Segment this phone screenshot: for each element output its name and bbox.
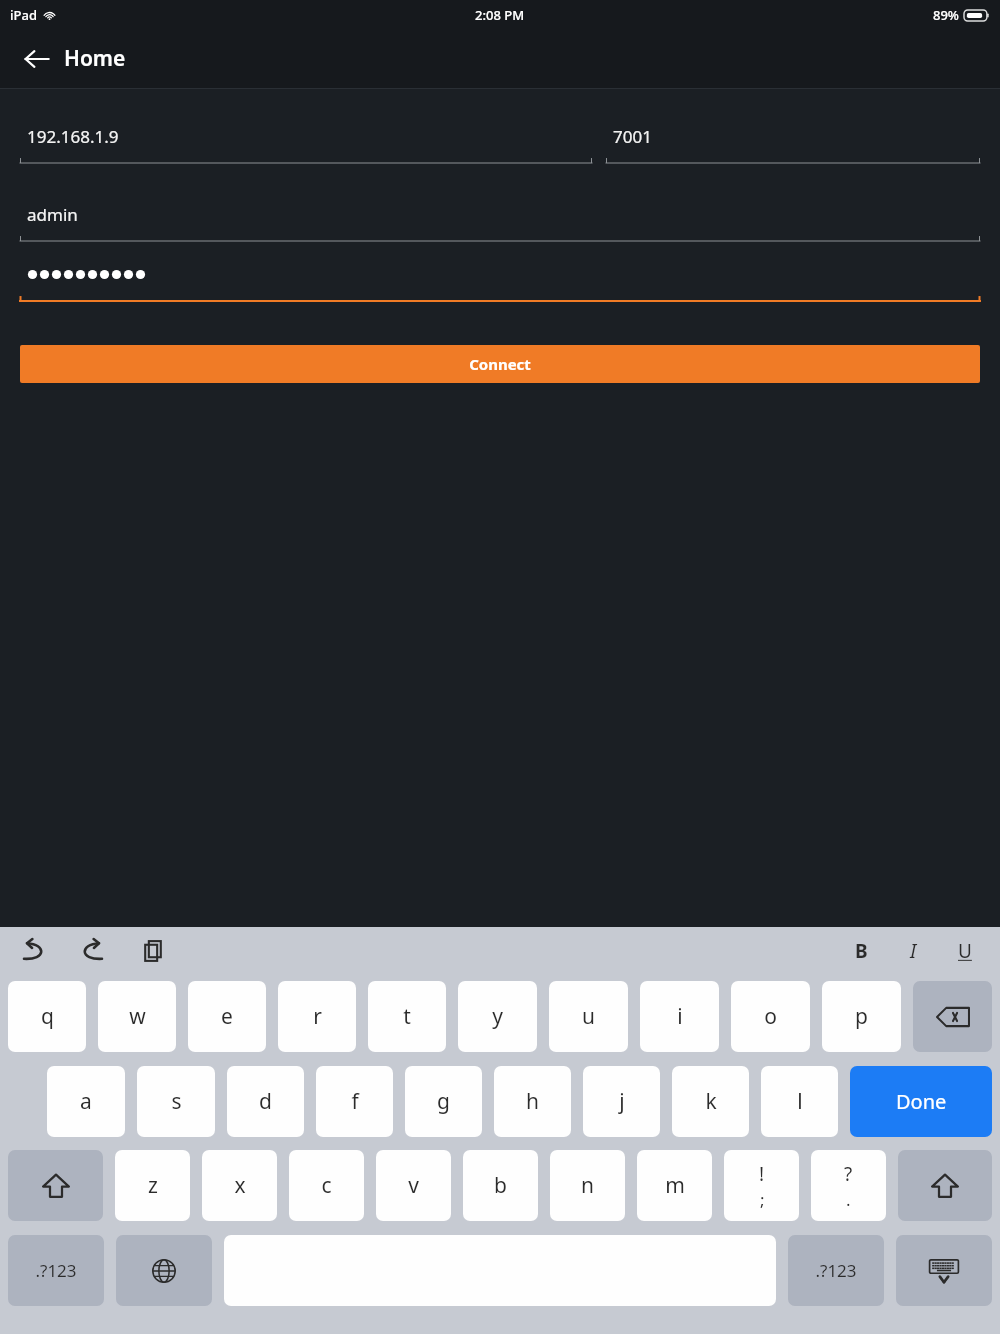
staticText: B bbox=[855, 938, 868, 964]
staticText: g bbox=[437, 1087, 450, 1116]
button[interactable]: g bbox=[405, 1066, 482, 1137]
button[interactable]: Hide keyboard bbox=[896, 1235, 992, 1306]
button[interactable]: l bbox=[761, 1066, 838, 1137]
staticText: y bbox=[492, 1002, 503, 1031]
button[interactable]: q bbox=[8, 981, 86, 1052]
staticText: I bbox=[910, 938, 917, 964]
staticText: n bbox=[581, 1171, 594, 1200]
button[interactable]: y bbox=[458, 981, 537, 1052]
staticText: m bbox=[665, 1171, 685, 1200]
staticText: 89% bbox=[933, 6, 959, 24]
button[interactable]: .?123 bbox=[8, 1235, 104, 1306]
staticText: x bbox=[234, 1171, 246, 1200]
staticText: h bbox=[526, 1087, 539, 1116]
button[interactable]: k bbox=[672, 1066, 749, 1137]
button[interactable]: w bbox=[98, 981, 176, 1052]
button[interactable]: ? bbox=[811, 1150, 886, 1221]
button[interactable]: Back bbox=[14, 36, 60, 82]
button[interactable]: m bbox=[637, 1150, 712, 1221]
button[interactable]: c bbox=[289, 1150, 364, 1221]
button[interactable]: Connect bbox=[20, 345, 980, 383]
staticText: s bbox=[171, 1087, 182, 1116]
button[interactable]: o bbox=[731, 981, 810, 1052]
button[interactable]: u bbox=[549, 981, 628, 1052]
button[interactable]: ! bbox=[724, 1150, 799, 1221]
button[interactable]: t bbox=[368, 981, 446, 1052]
button[interactable] bbox=[20, 248, 980, 308]
button[interactable]: Backspace bbox=[913, 981, 992, 1052]
staticText: t bbox=[403, 1002, 411, 1031]
staticText: ; bbox=[760, 1188, 765, 1211]
staticText: 7001 bbox=[613, 125, 652, 148]
button[interactable]: j bbox=[583, 1066, 660, 1137]
button[interactable]: Undo bbox=[14, 932, 52, 970]
staticText: .?123 bbox=[35, 1259, 77, 1282]
staticText: o bbox=[764, 1002, 777, 1031]
button[interactable]: d bbox=[227, 1066, 304, 1137]
staticText: v bbox=[408, 1171, 419, 1200]
staticText: .?123 bbox=[815, 1259, 857, 1282]
button[interactable]: r bbox=[278, 981, 356, 1052]
staticText: c bbox=[321, 1171, 332, 1200]
button[interactable]: e bbox=[188, 981, 266, 1052]
button[interactable]: h bbox=[494, 1066, 571, 1137]
staticText: q bbox=[41, 1002, 54, 1031]
button[interactable]: Shift bbox=[8, 1150, 103, 1221]
button[interactable]: Redo bbox=[74, 932, 112, 970]
staticText: j bbox=[619, 1087, 625, 1116]
button[interactable]: b bbox=[463, 1150, 538, 1221]
staticText: 2:08 PM bbox=[475, 6, 525, 24]
staticText: ! bbox=[759, 1161, 765, 1187]
staticText: Done bbox=[896, 1088, 947, 1115]
staticText: l bbox=[797, 1087, 803, 1116]
button[interactable]: B bbox=[844, 934, 878, 968]
staticText: Home bbox=[64, 44, 126, 73]
button[interactable]: z bbox=[115, 1150, 190, 1221]
staticText: . bbox=[846, 1188, 851, 1211]
button[interactable]: i bbox=[640, 981, 719, 1052]
staticText: d bbox=[259, 1087, 272, 1116]
button[interactable]: Done bbox=[850, 1066, 992, 1137]
staticText: k bbox=[705, 1087, 717, 1116]
staticText: 192.168.1.9 bbox=[27, 125, 119, 148]
button[interactable]: U bbox=[948, 934, 982, 968]
staticText: b bbox=[494, 1171, 507, 1200]
button[interactable]: I bbox=[896, 934, 930, 968]
button[interactable]: n bbox=[550, 1150, 625, 1221]
button[interactable]: 192.168.1.9 bbox=[20, 110, 592, 170]
staticText: w bbox=[129, 1002, 146, 1031]
button[interactable]: Paste bbox=[134, 932, 172, 970]
button[interactable]: admin bbox=[20, 188, 980, 248]
staticText: p bbox=[855, 1002, 868, 1031]
staticText: Connect bbox=[469, 354, 531, 374]
staticText: iPad bbox=[10, 6, 37, 24]
button[interactable]: a bbox=[47, 1066, 125, 1137]
staticText: u bbox=[582, 1002, 595, 1031]
staticText: admin bbox=[27, 203, 78, 226]
staticText: r bbox=[313, 1002, 322, 1031]
staticText: f bbox=[351, 1087, 359, 1116]
button[interactable]: x bbox=[202, 1150, 277, 1221]
staticText: e bbox=[221, 1002, 233, 1031]
button[interactable]: f bbox=[316, 1066, 393, 1137]
staticText: ? bbox=[844, 1161, 853, 1187]
button[interactable]: Shift bbox=[898, 1150, 992, 1221]
button[interactable]: Change keyboard language bbox=[116, 1235, 212, 1306]
button[interactable]: p bbox=[822, 981, 901, 1052]
button[interactable]: .?123 bbox=[788, 1235, 884, 1306]
button[interactable]: s bbox=[137, 1066, 215, 1137]
staticText: i bbox=[677, 1002, 683, 1031]
button[interactable]: v bbox=[376, 1150, 451, 1221]
staticText: a bbox=[80, 1087, 92, 1116]
staticText: U bbox=[958, 938, 972, 964]
button[interactable]: 7001 bbox=[606, 110, 980, 170]
staticText: z bbox=[148, 1171, 158, 1200]
